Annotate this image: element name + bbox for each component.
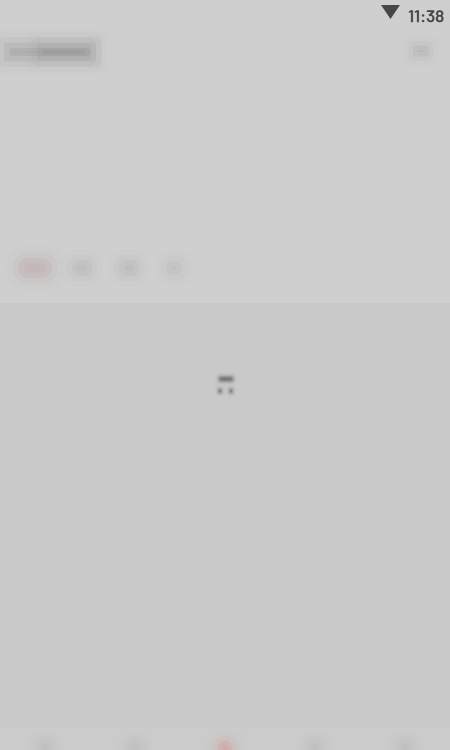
button[interactable]: Tab 2 — [0, 0, 54, 54]
button[interactable]: Tab 5 — [0, 0, 54, 54]
button[interactable]: Tab 1 — [0, 0, 54, 54]
button[interactable]: Tab 3 — [0, 0, 54, 54]
button[interactable]: Tab 4 — [0, 0, 54, 54]
button[interactable]: Filter 4 — [0, 0, 61, 60]
button[interactable]: Filter 2 — [0, 0, 65, 61]
staticText: 11:38 — [408, 5, 444, 26]
button[interactable]: All — [0, 0, 82, 68]
button[interactable]: Menu — [0, 0, 55, 50]
button[interactable]: Filter 3 — [0, 0, 65, 61]
